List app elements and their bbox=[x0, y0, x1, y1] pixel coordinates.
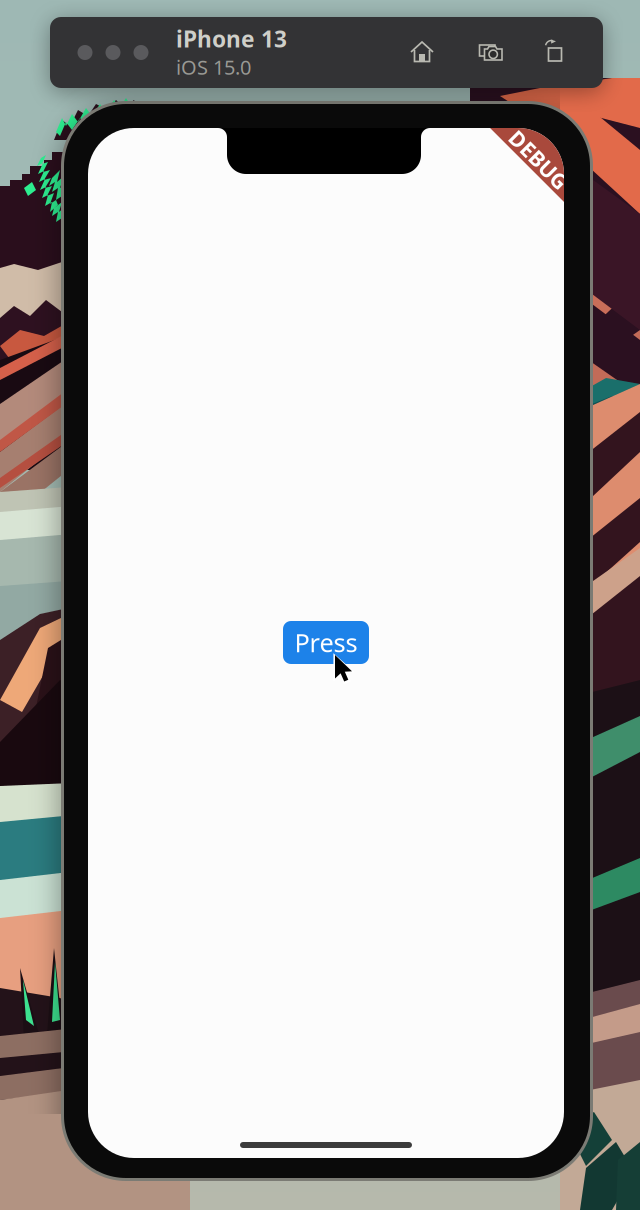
button[interactable]: Home bbox=[400, 30, 444, 74]
staticText: iPhone 13 bbox=[176, 24, 287, 54]
button[interactable]: Rotate bbox=[532, 30, 576, 74]
staticText: DEBUG bbox=[510, 149, 583, 177]
staticText: Press bbox=[294, 626, 357, 659]
button[interactable]: Screenshot bbox=[469, 30, 513, 74]
button[interactable]: Press bbox=[283, 621, 369, 664]
staticText: iOS 15.0 bbox=[176, 54, 251, 80]
